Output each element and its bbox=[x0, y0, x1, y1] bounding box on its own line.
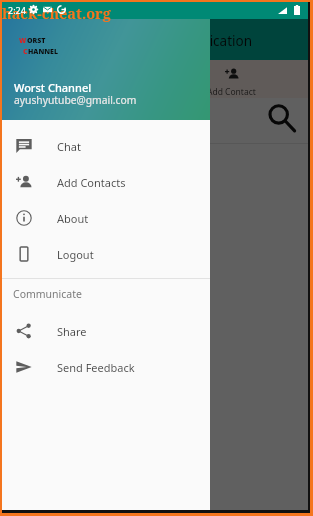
staticText: W bbox=[19, 36, 27, 46]
button[interactable]: Chat bbox=[2, 128, 210, 164]
button[interactable]: Share bbox=[2, 313, 210, 349]
staticText: Communication bbox=[151, 32, 253, 50]
staticText: Chat bbox=[57, 139, 81, 154]
button[interactable]: Send Feedback bbox=[2, 349, 210, 385]
staticText: Share bbox=[57, 324, 87, 339]
staticText: C bbox=[23, 47, 28, 57]
staticText: Send Feedback bbox=[57, 360, 135, 375]
staticText: 2:24 bbox=[8, 4, 26, 16]
staticText: ayushyutube@gmail.com bbox=[14, 93, 137, 107]
staticText: ORST bbox=[27, 36, 46, 46]
staticText: Add Contacts bbox=[57, 175, 126, 190]
button[interactable]: Add Contacts bbox=[2, 164, 210, 200]
staticText: HANNEL bbox=[28, 47, 59, 57]
staticText: About bbox=[57, 211, 89, 226]
staticText: hack-cheat.org bbox=[2, 3, 111, 23]
staticText: Communicate bbox=[13, 287, 82, 301]
staticText: Add Contact bbox=[207, 86, 256, 98]
button[interactable]: Chats bbox=[2, 60, 155, 98]
button[interactable]: Logout bbox=[2, 236, 210, 272]
button[interactable]: Add Contact bbox=[155, 60, 308, 98]
staticText: Worst Channel bbox=[14, 80, 92, 95]
button[interactable]: About bbox=[2, 200, 210, 236]
staticText: Chats bbox=[67, 86, 90, 98]
button[interactable]: Search bbox=[267, 103, 297, 133]
staticText: Logout bbox=[57, 247, 94, 262]
